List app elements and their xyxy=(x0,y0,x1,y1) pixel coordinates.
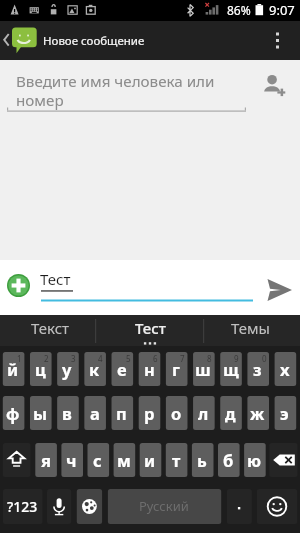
staticText: Текст xyxy=(31,318,70,338)
button[interactable]: Change keyboard language xyxy=(77,489,102,524)
staticText: у xyxy=(62,358,72,380)
staticText: й xyxy=(7,358,19,380)
staticText: ш xyxy=(195,358,211,380)
button[interactable]: Тест xyxy=(100,315,200,346)
staticText: Тест xyxy=(135,318,166,338)
staticText: з xyxy=(253,358,262,380)
staticText: е xyxy=(117,358,127,380)
button[interactable] xyxy=(30,396,52,430)
staticText: в xyxy=(62,402,72,424)
staticText: ю xyxy=(247,449,262,471)
staticText: 7 xyxy=(180,353,185,364)
button[interactable]: Текст xyxy=(0,315,100,346)
staticText: ж xyxy=(250,402,265,424)
button[interactable] xyxy=(57,396,79,430)
button[interactable] xyxy=(193,396,215,430)
button[interactable] xyxy=(35,443,57,477)
staticText: о xyxy=(171,402,182,424)
staticText: 9 xyxy=(234,353,239,364)
staticText: 1 xyxy=(17,353,22,364)
button[interactable]: Navigate up xyxy=(0,21,40,60)
staticText: р xyxy=(144,402,155,424)
staticText: а xyxy=(90,402,100,424)
staticText: 2 xyxy=(44,353,49,364)
button[interactable] xyxy=(3,396,25,430)
staticText: ы xyxy=(33,402,48,424)
button[interactable] xyxy=(112,396,134,430)
staticText: т xyxy=(172,449,181,471)
button[interactable] xyxy=(218,443,240,477)
button[interactable] xyxy=(166,352,188,386)
button[interactable]: More options xyxy=(264,21,292,60)
staticText: 6 xyxy=(153,353,158,364)
button[interactable] xyxy=(275,396,297,430)
button[interactable] xyxy=(61,443,83,477)
staticText: 9:07 xyxy=(269,1,295,19)
button[interactable] xyxy=(139,352,161,386)
button[interactable]: Shift xyxy=(3,443,31,477)
button[interactable] xyxy=(139,396,161,430)
staticText: и xyxy=(144,449,156,471)
staticText: л xyxy=(198,402,209,424)
staticText: Русский xyxy=(139,497,189,515)
button[interactable] xyxy=(3,489,43,524)
staticText: ф xyxy=(6,402,20,424)
staticText: х xyxy=(280,358,290,380)
staticText: 86% xyxy=(227,2,251,18)
staticText: Темы xyxy=(231,318,270,338)
button[interactable] xyxy=(244,443,266,477)
button[interactable]: Add recipient xyxy=(248,60,300,110)
button[interactable] xyxy=(220,352,242,386)
button[interactable]: Space xyxy=(108,489,221,524)
button[interactable]: Voice input xyxy=(47,489,71,524)
button[interactable]: Period xyxy=(227,489,252,524)
staticText: с xyxy=(93,449,102,471)
button[interactable] xyxy=(166,396,188,430)
staticText: я xyxy=(41,449,51,471)
button[interactable]: Emoji xyxy=(257,489,297,524)
button[interactable] xyxy=(84,396,106,430)
staticText: ц xyxy=(35,358,46,380)
button[interactable] xyxy=(193,352,215,386)
staticText: д xyxy=(225,402,236,424)
button[interactable] xyxy=(88,443,110,477)
button[interactable] xyxy=(114,443,136,477)
button[interactable] xyxy=(192,443,214,477)
button[interactable]: Темы xyxy=(200,315,300,346)
staticText: 4 xyxy=(98,353,103,364)
staticText: Тест xyxy=(40,269,71,289)
staticText: 3 xyxy=(71,353,76,364)
button[interactable]: Send xyxy=(258,260,300,315)
button[interactable] xyxy=(84,352,106,386)
button[interactable] xyxy=(166,443,188,477)
staticText: ь xyxy=(197,449,207,471)
staticText: п xyxy=(116,402,127,424)
staticText: м xyxy=(117,449,131,471)
button[interactable]: Backspace xyxy=(269,443,297,477)
button[interactable] xyxy=(140,443,162,477)
staticText: Введите имя человека или номер xyxy=(16,71,215,111)
staticText: ?123 xyxy=(7,497,38,516)
button[interactable] xyxy=(247,396,269,430)
button[interactable] xyxy=(57,352,79,386)
button[interactable] xyxy=(30,352,52,386)
staticText: к xyxy=(89,358,100,380)
button[interactable] xyxy=(247,352,269,386)
button[interactable] xyxy=(220,396,242,430)
staticText: 8 xyxy=(207,353,212,364)
staticText: э xyxy=(280,402,289,424)
button[interactable] xyxy=(112,352,134,386)
staticText: б xyxy=(223,449,234,471)
button[interactable] xyxy=(275,352,297,386)
staticText: 0 xyxy=(262,353,267,364)
staticText: ч xyxy=(66,449,77,471)
staticText: Новое сообщение xyxy=(43,33,145,49)
button[interactable]: Add attachment xyxy=(1,268,35,302)
staticText: г xyxy=(172,358,180,380)
staticText: 5 xyxy=(126,353,131,364)
staticText: н xyxy=(144,358,155,380)
button[interactable] xyxy=(3,352,25,386)
staticText: щ xyxy=(223,358,239,380)
